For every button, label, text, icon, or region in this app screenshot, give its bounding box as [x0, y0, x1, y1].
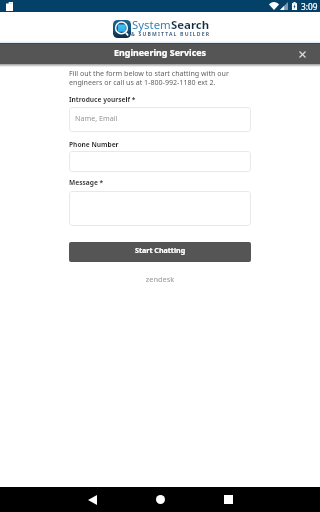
button[interactable]: Recent apps [212, 487, 244, 512]
staticText: Name, Email [75, 113, 118, 123]
staticText: System [132, 17, 171, 33]
staticText: Engineering Services [114, 46, 207, 58]
button[interactable]: Name, Email [69, 107, 251, 132]
staticText: & SUBMITTAL BUILDER [131, 31, 211, 38]
button[interactable]: Back [76, 487, 108, 512]
staticText: Start Chatting [135, 245, 186, 255]
other: Notification [6, 2, 13, 11]
button[interactable] [69, 151, 251, 172]
staticText: Fill out the form below to start chattin… [69, 68, 251, 88]
staticText: Phone Number [69, 140, 119, 149]
button[interactable]: Home [144, 487, 176, 512]
staticText: Introduce yourself * [69, 95, 136, 104]
button[interactable]: zendesk [69, 274, 251, 284]
staticText: Search [171, 17, 210, 33]
staticText: Message * [69, 178, 104, 187]
button[interactable]: Start Chatting [69, 242, 251, 262]
button[interactable] [69, 191, 251, 226]
staticText: 3:09 [301, 1, 318, 12]
button[interactable]: Close dialog [291, 44, 313, 64]
